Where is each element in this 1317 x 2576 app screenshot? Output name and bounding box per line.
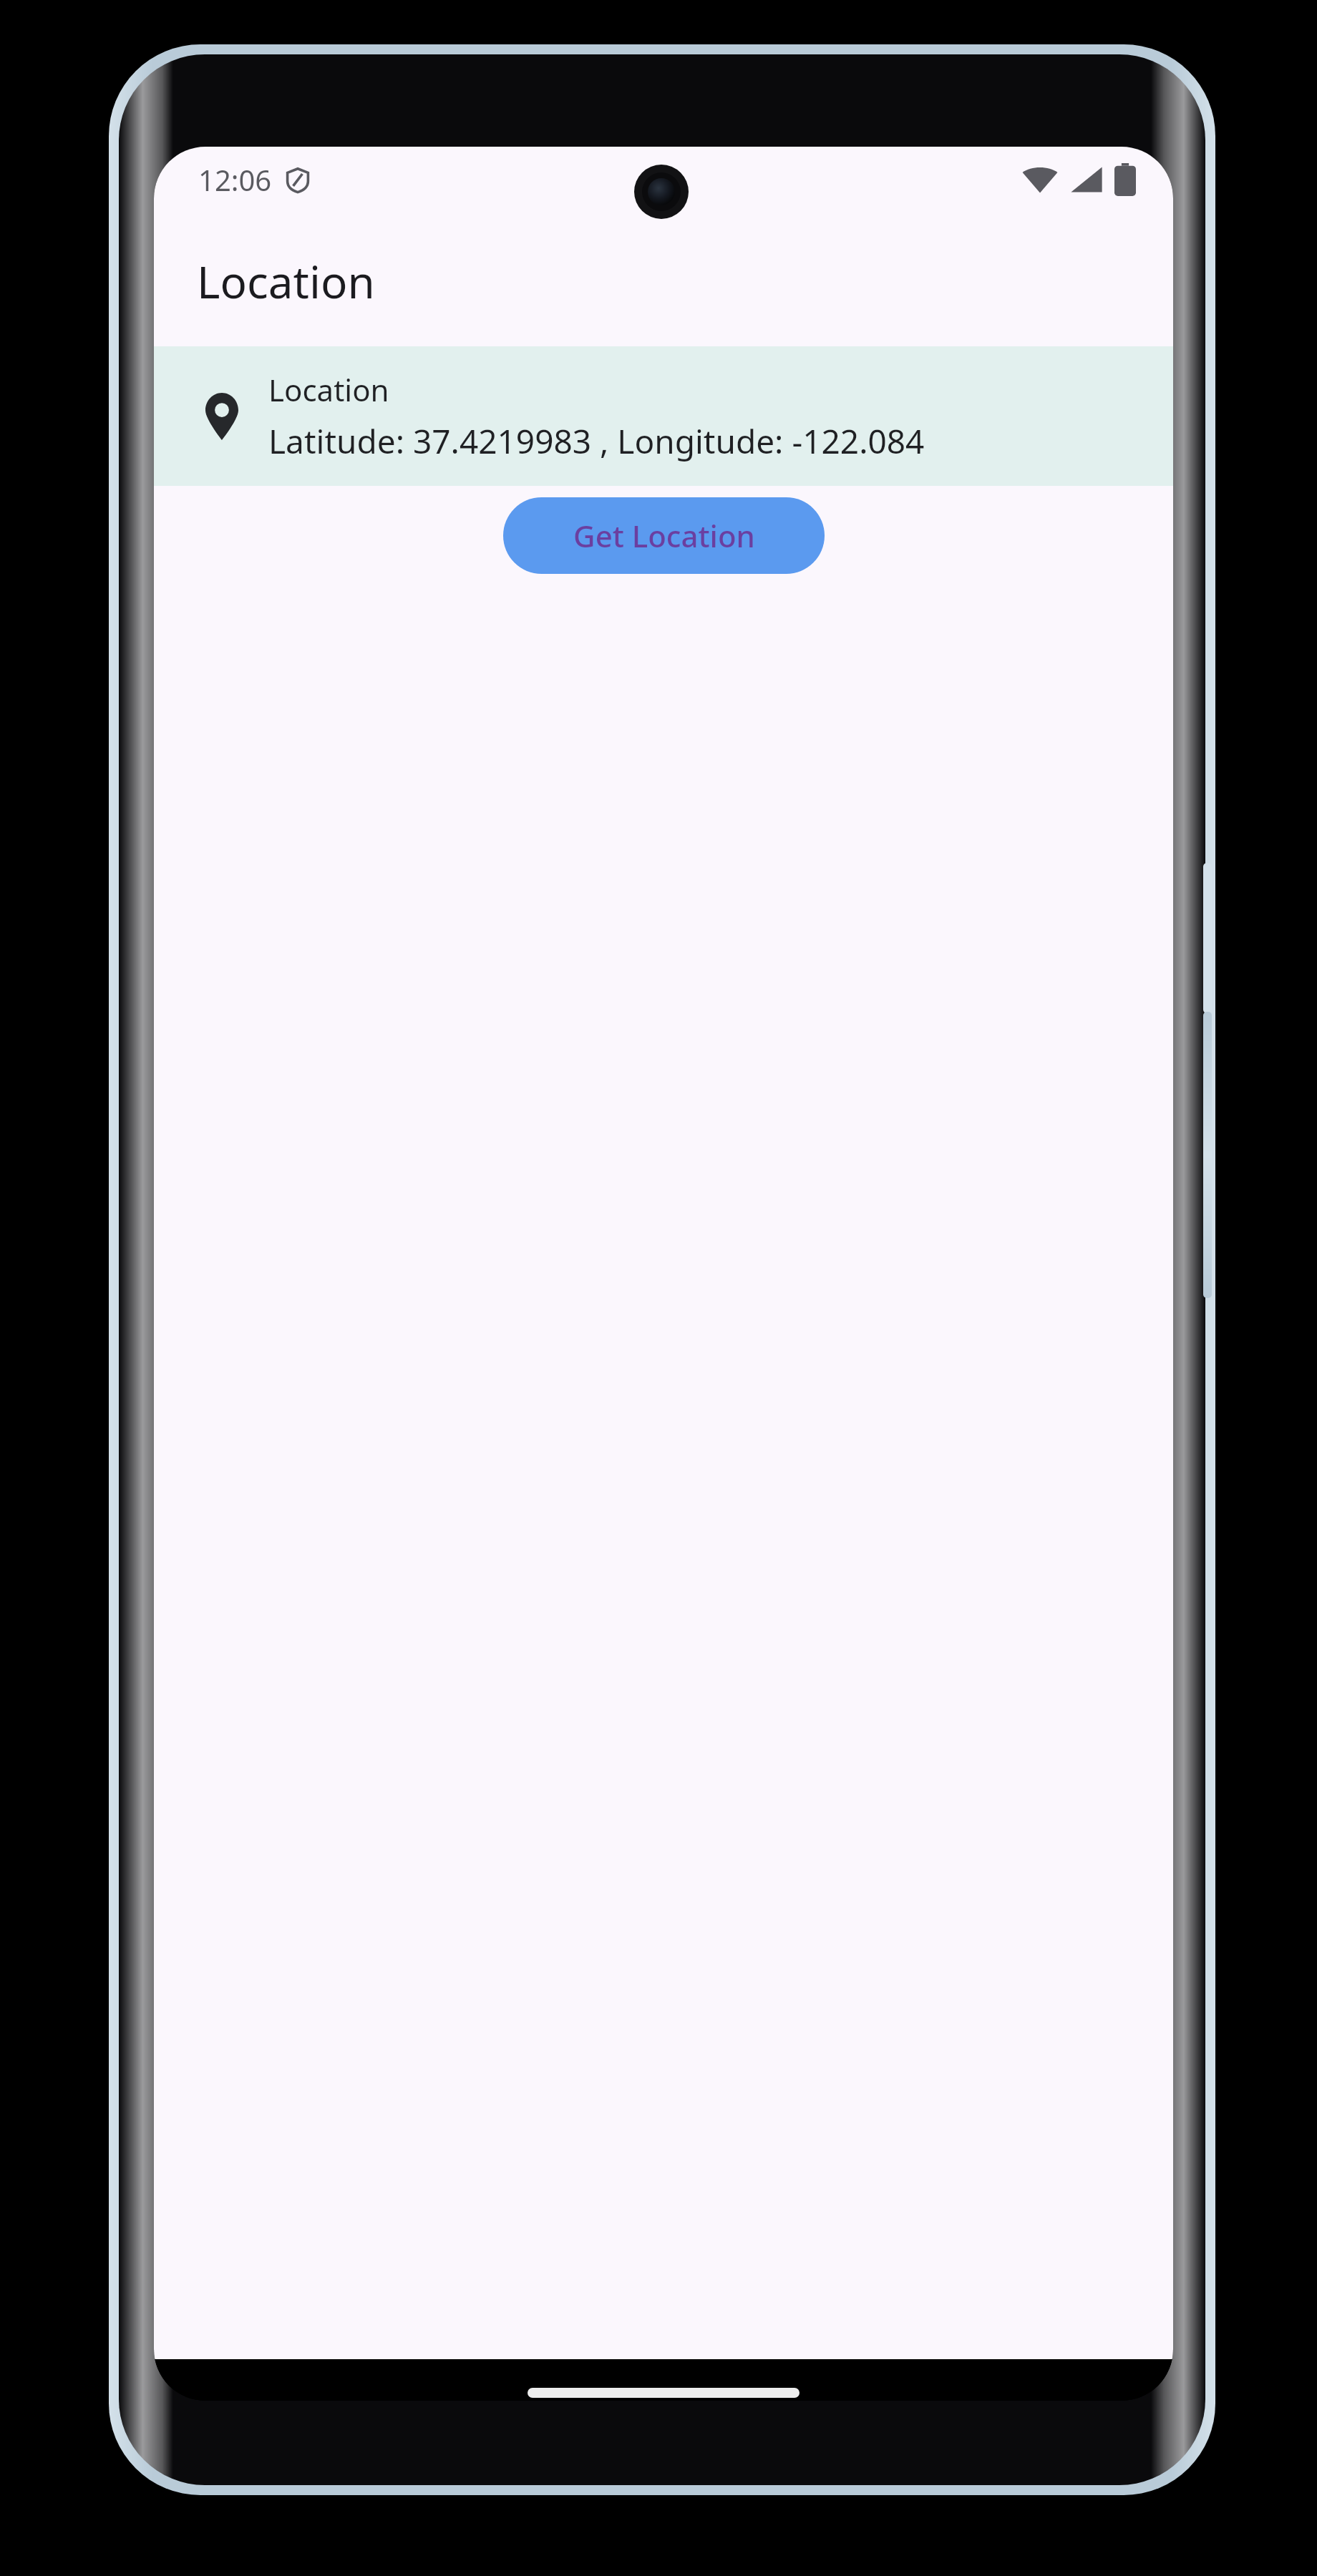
button[interactable]: Get Location [503,497,825,574]
other: Location pin [205,393,238,440]
button[interactable]: Location pin [154,346,1173,486]
staticText: Location [197,251,375,311]
staticText: 12:06 [198,160,272,199]
staticText: Get Location [573,515,755,556]
staticText: Location [268,369,389,410]
staticText: Latitude: 37.4219983 , Longitude: -122.0… [268,419,925,464]
